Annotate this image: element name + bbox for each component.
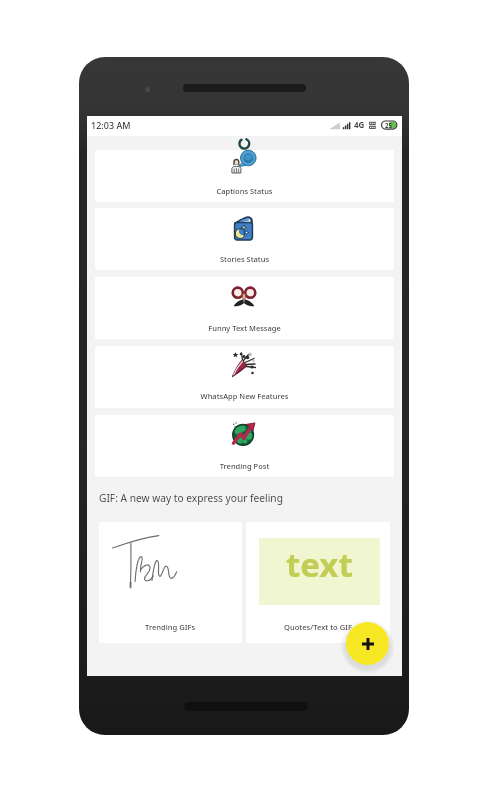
button[interactable]: Trending Post xyxy=(95,415,394,477)
staticText: Captions Status xyxy=(95,186,394,196)
staticText: Funny Text Message xyxy=(95,323,394,333)
button[interactable]: WhatsApp New Features xyxy=(95,346,394,408)
staticText: Quotes/Text to GIF xyxy=(284,622,352,632)
staticText: Trending GIFs xyxy=(145,622,196,632)
staticText: GIF: A new way to express your feeling xyxy=(99,491,283,505)
staticText: 25 xyxy=(385,121,393,129)
staticText: Stories Status xyxy=(95,254,394,264)
staticText: text xyxy=(286,542,353,587)
button[interactable]: Trending GIFs xyxy=(99,522,242,643)
button[interactable]: Stories Status xyxy=(95,208,394,270)
staticText: 4G xyxy=(354,119,365,130)
button[interactable]: Funny Text Message xyxy=(95,277,394,339)
button[interactable]: Captions Status xyxy=(95,150,394,202)
button[interactable]: Add xyxy=(346,622,389,665)
staticText: Trending Post xyxy=(95,461,394,471)
button[interactable]: text xyxy=(246,522,390,643)
staticText: 12:03 AM xyxy=(91,119,131,131)
staticText: WhatsApp New Features xyxy=(95,391,394,401)
